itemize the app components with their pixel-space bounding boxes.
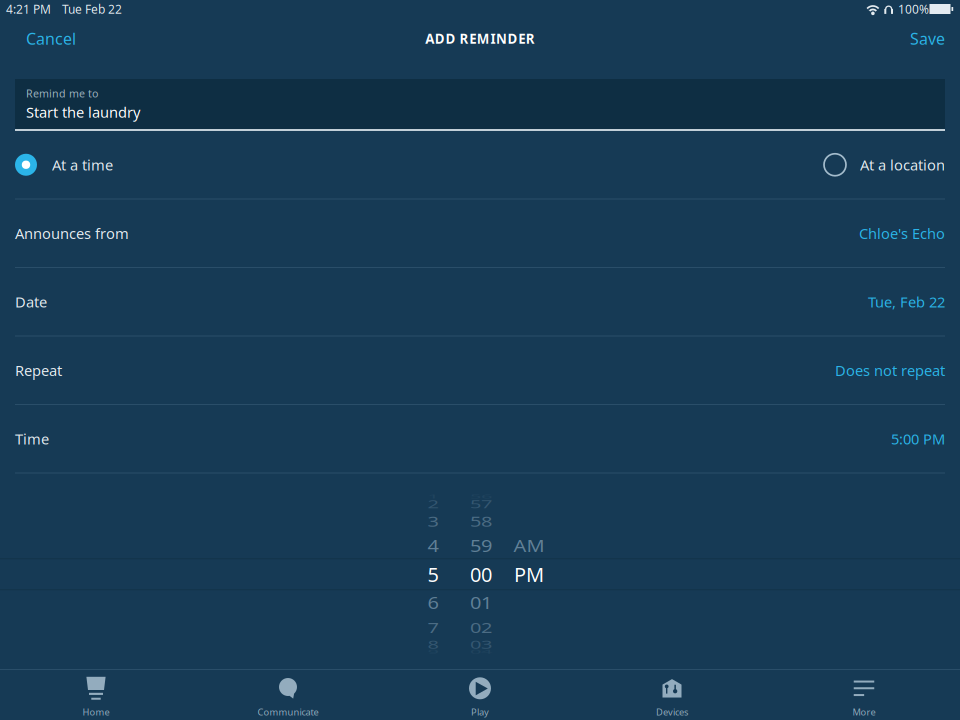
staticText: 58 xyxy=(470,508,492,534)
button[interactable]: Save xyxy=(898,20,960,57)
button[interactable]: Repeat xyxy=(0,336,960,405)
staticText: 5 xyxy=(427,561,438,588)
staticText: Communicate xyxy=(257,706,318,718)
staticText: Chloe's Echo xyxy=(859,223,945,243)
staticText: 7 xyxy=(427,614,438,641)
staticText: 4 xyxy=(427,532,438,559)
staticText: Start the laundry xyxy=(26,102,140,122)
button[interactable]: Home xyxy=(0,670,192,720)
button[interactable]: Play xyxy=(384,670,576,720)
staticText: Save xyxy=(910,28,945,49)
staticText: 100% xyxy=(898,1,929,17)
button[interactable]: More xyxy=(768,670,960,720)
staticText: Play xyxy=(471,706,489,718)
staticText: Time xyxy=(15,429,49,448)
button[interactable]: Date xyxy=(0,268,960,336)
staticText: 57 xyxy=(470,491,492,517)
staticText: 9 xyxy=(427,639,438,665)
button[interactable]: At a time xyxy=(15,154,113,176)
staticText: Tue, Feb 22 xyxy=(868,292,945,311)
staticText: Tue Feb 22 xyxy=(62,1,122,17)
button[interactable]: Announces from xyxy=(0,199,960,268)
staticText: Devices xyxy=(656,706,688,718)
button[interactable]: Devices xyxy=(576,670,768,720)
staticText: 01 xyxy=(470,589,492,616)
staticText: Date xyxy=(15,292,47,311)
staticText: Cancel xyxy=(26,28,76,49)
staticText: PM xyxy=(514,561,544,588)
button[interactable]: Communicate xyxy=(192,670,384,720)
staticText: AM xyxy=(513,532,544,559)
staticText: 2 xyxy=(427,491,438,517)
staticText: 02 xyxy=(470,614,492,641)
staticText: ADD REMINDER xyxy=(425,30,535,47)
staticText: Repeat xyxy=(15,360,62,380)
staticText: 04 xyxy=(470,639,492,665)
staticText: More xyxy=(852,706,875,718)
staticText: 56 xyxy=(470,483,492,510)
staticText: Does not repeat xyxy=(835,360,945,380)
staticText: 1 xyxy=(427,483,438,510)
staticText: 3 xyxy=(427,508,438,534)
button[interactable]: At a location xyxy=(824,154,945,176)
staticText: 03 xyxy=(470,631,492,658)
staticText: Home xyxy=(82,706,109,718)
staticText: 4:21 PM xyxy=(6,1,51,17)
staticText: Announces from xyxy=(15,223,129,243)
button[interactable]: Time xyxy=(0,405,960,473)
staticText: 6 xyxy=(427,589,438,616)
staticText: At a time xyxy=(52,155,113,174)
staticText: 8 xyxy=(427,631,438,658)
staticText: 5:00 PM xyxy=(891,429,945,448)
staticText: Remind me to xyxy=(26,86,98,100)
button[interactable]: Cancel xyxy=(0,20,88,57)
staticText: 00 xyxy=(470,561,492,588)
staticText: At a location xyxy=(860,155,945,174)
staticText: 59 xyxy=(470,532,492,559)
